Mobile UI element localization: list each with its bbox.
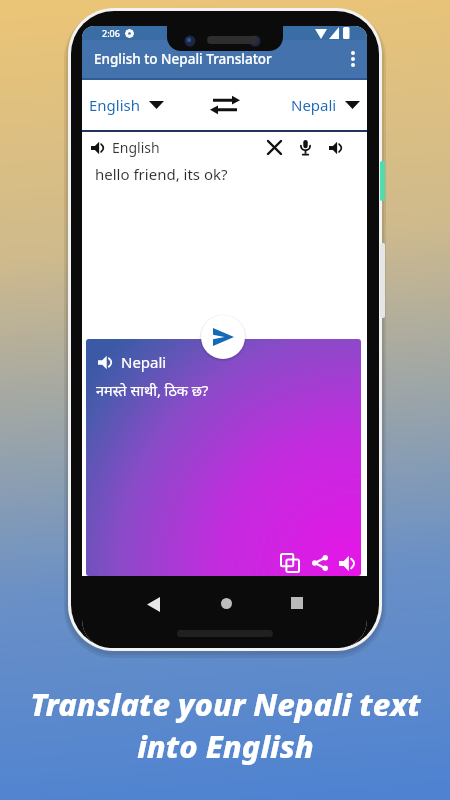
staticText: 2:06 <box>102 27 120 39</box>
staticText: Nepali <box>291 95 337 115</box>
staticText: English to Nepali Translator <box>94 50 272 68</box>
staticText: नमस्ते साथी, ठिक छ? <box>96 380 209 400</box>
staticText: Nepali <box>121 352 167 372</box>
staticText: Translate your Nepali text <box>30 683 421 725</box>
staticText: English <box>112 138 160 157</box>
staticText: hello friend, its ok? <box>95 164 228 184</box>
staticText: into English <box>137 725 314 767</box>
staticText: English <box>89 95 141 115</box>
